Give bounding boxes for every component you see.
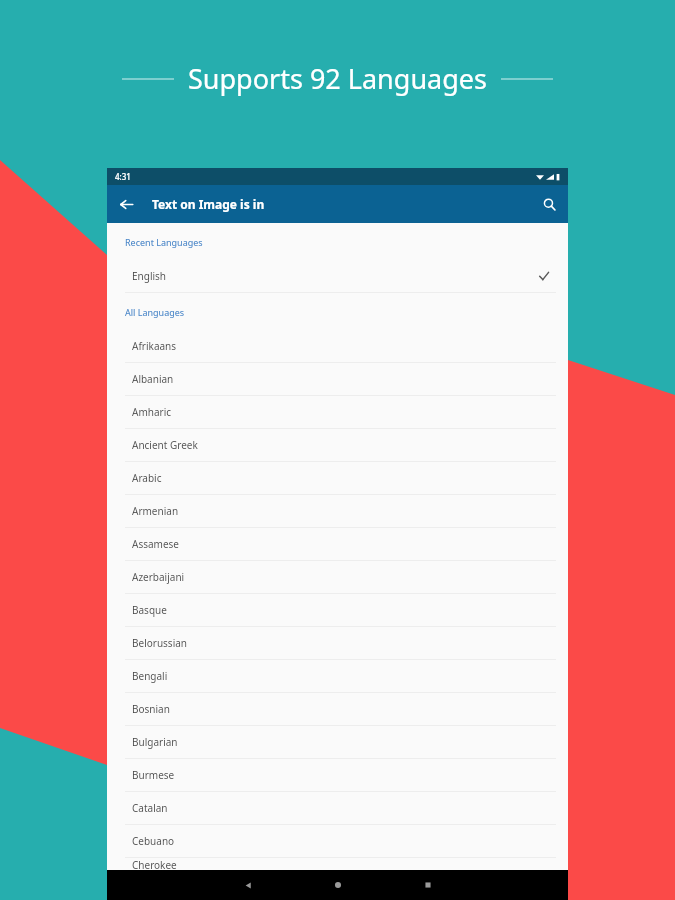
button[interactable]: Belorussian [107, 627, 568, 659]
button[interactable]: Bengali [107, 660, 568, 692]
button[interactable]: English [107, 260, 568, 292]
button[interactable]: Back [107, 185, 145, 223]
button[interactable]: Back [203, 870, 293, 900]
staticText: All Languages [125, 306, 185, 318]
button[interactable]: Albanian [107, 363, 568, 395]
button[interactable]: Arabic [107, 462, 568, 494]
staticText: 4:31 [115, 171, 131, 182]
staticText: Bosnian [132, 702, 170, 716]
button[interactable]: Azerbaijani [107, 561, 568, 593]
staticText: Amharic [132, 405, 172, 419]
staticText: Bengali [132, 669, 168, 683]
staticText: Cebuano [132, 834, 175, 848]
button[interactable]: Bosnian [107, 693, 568, 725]
button[interactable]: Afrikaans [107, 330, 568, 362]
staticText: Burmese [132, 768, 175, 782]
staticText: Azerbaijani [132, 570, 185, 584]
button[interactable]: Bulgarian [107, 726, 568, 758]
button[interactable]: Home [293, 870, 383, 900]
staticText: Assamese [132, 537, 179, 551]
button[interactable]: Ancient Greek [107, 429, 568, 461]
staticText: Ancient Greek [132, 438, 198, 452]
button[interactable]: Burmese [107, 759, 568, 791]
staticText: Arabic [132, 471, 162, 485]
button[interactable]: Basque [107, 594, 568, 626]
staticText: Cherokee [132, 858, 177, 870]
staticText: Text on Image is in [152, 196, 265, 212]
button[interactable]: Catalan [107, 792, 568, 824]
staticText: Albanian [132, 372, 174, 386]
staticText: Basque [132, 603, 167, 617]
staticText: Belorussian [132, 636, 188, 650]
staticText: Recent Languages [125, 236, 203, 248]
button[interactable]: Recent apps [383, 870, 473, 900]
button[interactable]: Search [530, 185, 568, 223]
button[interactable]: Armenian [107, 495, 568, 527]
staticText: Catalan [132, 801, 168, 815]
staticText: Armenian [132, 504, 179, 518]
staticText: Afrikaans [132, 339, 177, 353]
button[interactable]: Amharic [107, 396, 568, 428]
staticText: Supports 92 Languages [188, 60, 487, 97]
staticText: English [132, 269, 167, 283]
button[interactable]: Assamese [107, 528, 568, 560]
button[interactable]: Cherokee [107, 858, 568, 870]
staticText: Bulgarian [132, 735, 178, 749]
button[interactable]: Cebuano [107, 825, 568, 857]
